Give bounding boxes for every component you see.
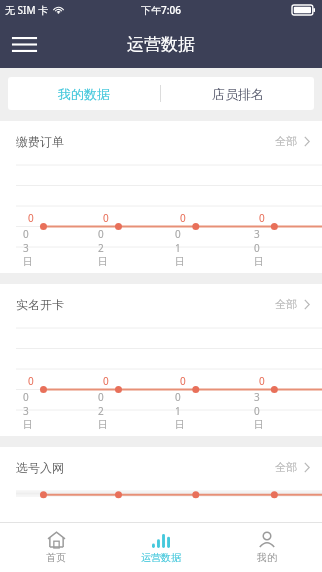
button[interactable]: 店员排名: [161, 77, 314, 110]
staticText: 店员排名: [212, 86, 264, 102]
staticText: 我的数据: [58, 86, 110, 102]
staticText: 实名开卡: [16, 297, 64, 312]
button[interactable]: 我的数据: [8, 77, 160, 110]
staticText: 全部: [275, 460, 297, 474]
staticText: 选号入网: [16, 460, 64, 475]
button[interactable]: 运营数据: [111, 523, 211, 572]
button[interactable]: 选号入网: [0, 447, 322, 487]
button[interactable]: 缴费订单: [0, 121, 322, 161]
button[interactable]: Menu: [2, 22, 46, 66]
staticText: 缴费订单: [16, 134, 64, 149]
staticText: 全部: [275, 297, 297, 311]
staticText: 下午7:06: [141, 3, 181, 17]
staticText: 我的: [257, 551, 277, 564]
staticText: 首页: [46, 551, 66, 564]
button[interactable]: 首页: [6, 523, 106, 572]
staticText: 运营数据: [141, 551, 181, 564]
staticText: 无 SIM 卡: [5, 3, 49, 17]
button[interactable]: 实名开卡: [0, 284, 322, 324]
staticText: 运营数据: [127, 34, 195, 55]
staticText: 全部: [275, 134, 297, 148]
button[interactable]: 我的: [217, 523, 317, 572]
